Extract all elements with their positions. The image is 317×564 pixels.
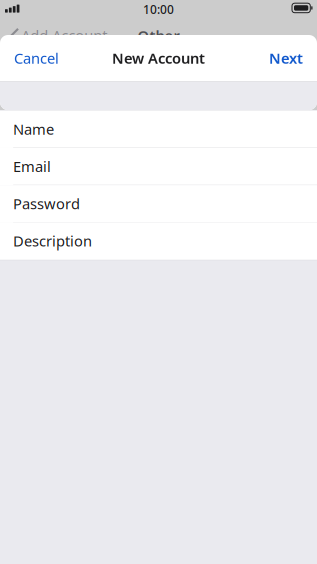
button[interactable]: Add Account xyxy=(0,26,107,45)
button[interactable]: Name xyxy=(0,111,317,148)
staticText: Password xyxy=(13,194,80,213)
staticText: Description xyxy=(13,231,92,251)
staticText: Add Account xyxy=(21,26,107,45)
staticText: New Account xyxy=(112,48,205,68)
staticText: Name xyxy=(13,119,54,139)
staticText: Other xyxy=(137,26,179,45)
staticText: Cancel xyxy=(14,48,59,68)
button[interactable]: Next xyxy=(259,35,317,81)
button[interactable]: Description xyxy=(0,222,317,260)
button[interactable]: Cancel xyxy=(0,35,69,81)
button[interactable]: Password xyxy=(0,185,317,222)
button[interactable]: Email xyxy=(0,148,317,185)
staticText: Email xyxy=(13,157,51,176)
staticText: 10:00 xyxy=(143,1,174,17)
staticText: Next xyxy=(269,48,303,68)
